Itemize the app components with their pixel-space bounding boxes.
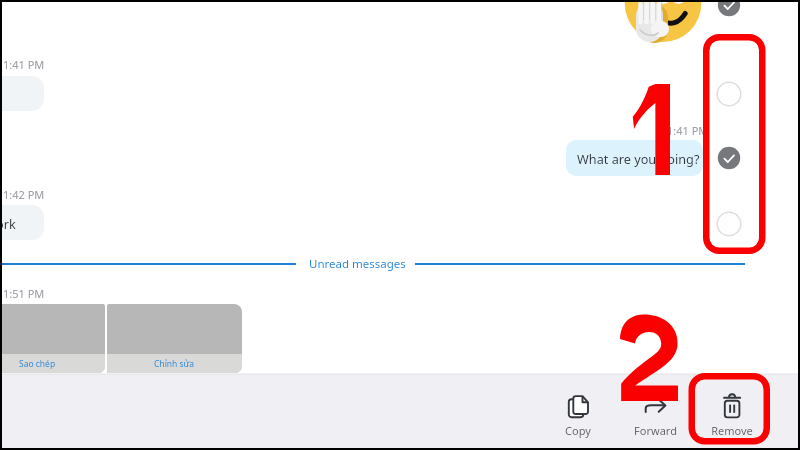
button[interactable]: Received message — [0, 76, 44, 111]
staticText: ork — [0, 215, 16, 232]
button[interactable]: Message selected — [715, 0, 743, 19]
staticText: 1:51 PM — [3, 286, 45, 301]
staticText: Copy — [565, 423, 591, 438]
staticText: 1:42 PM — [3, 187, 45, 202]
staticText: Forward — [634, 423, 677, 438]
staticText: Chỉnh sửa — [154, 358, 195, 370]
button[interactable]: Received message: work — [0, 205, 44, 240]
button[interactable]: Copy — [548, 378, 608, 444]
button[interactable]: Select message — [715, 210, 743, 238]
staticText: Unread messages — [309, 256, 406, 272]
staticText: 1:41 PM — [667, 123, 709, 138]
button[interactable]: What are you doing? — [566, 140, 703, 176]
staticText: What are you doing? — [577, 150, 700, 167]
staticText: Remove — [711, 423, 753, 438]
button[interactable]: Remove — [702, 378, 762, 444]
staticText: Sao chép — [19, 358, 56, 370]
button[interactable]: Sao chép — [0, 354, 105, 373]
button[interactable]: Message selected — [715, 144, 743, 172]
button[interactable]: Forward — [625, 378, 685, 444]
button[interactable]: Select message — [715, 80, 743, 108]
staticText: 1:41 PM — [3, 57, 45, 72]
